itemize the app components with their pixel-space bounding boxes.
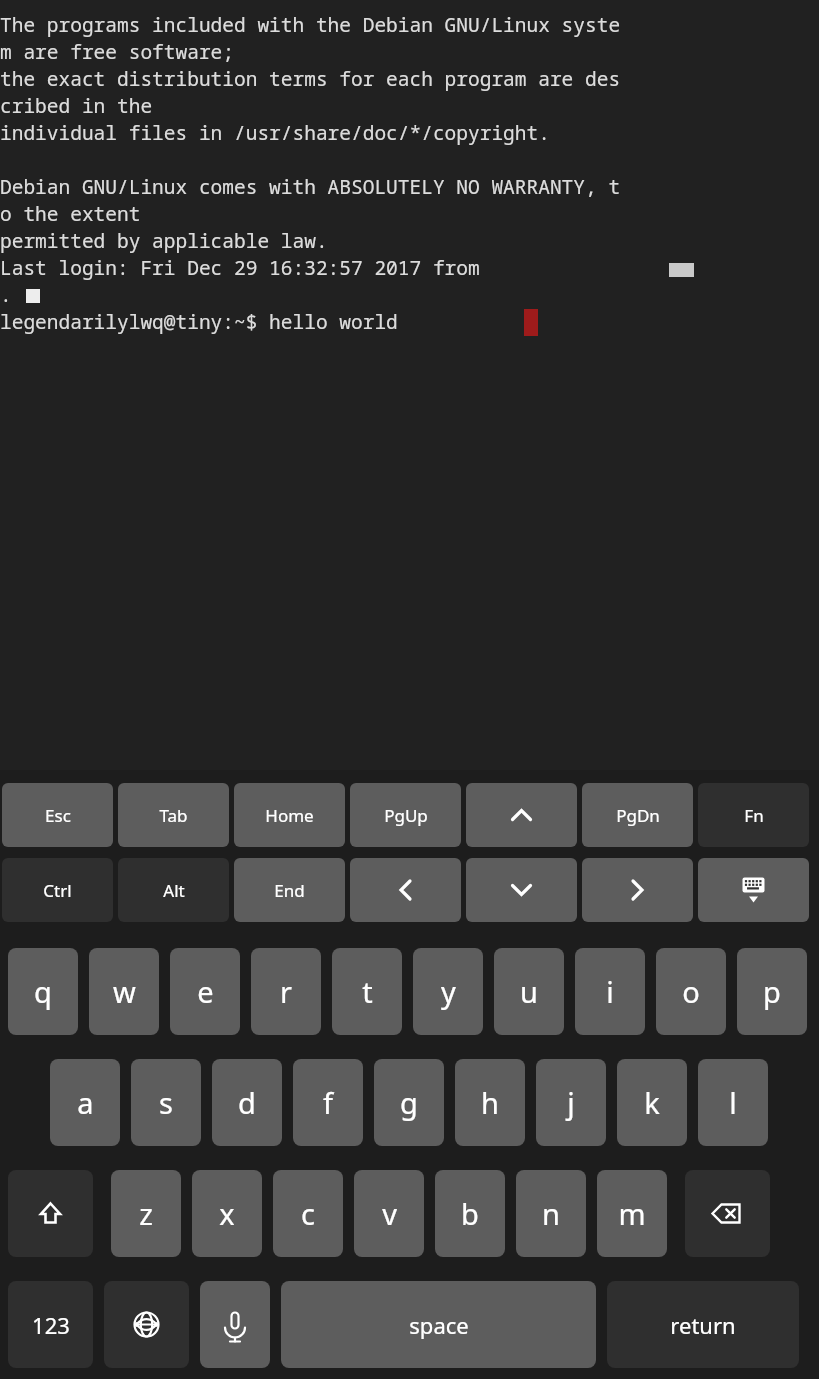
staticText: cribed in the	[0, 92, 153, 119]
staticText: g	[400, 1083, 418, 1122]
button[interactable]: q	[8, 948, 78, 1035]
button[interactable]: b	[435, 1170, 505, 1257]
button[interactable]: k	[617, 1059, 687, 1146]
button[interactable]: Voice input	[200, 1281, 270, 1368]
staticText: d	[238, 1083, 256, 1122]
staticText: Alt	[163, 879, 185, 902]
staticText: End	[274, 879, 305, 902]
button[interactable]: p	[737, 948, 807, 1035]
button[interactable]: PgUp	[350, 783, 461, 847]
staticText: r	[280, 972, 292, 1011]
button[interactable]: e	[170, 948, 240, 1035]
staticText: l	[729, 1083, 737, 1122]
staticText: u	[520, 972, 538, 1011]
staticText: x	[219, 1194, 235, 1233]
staticText: PgUp	[384, 804, 428, 827]
button[interactable]: The programs included with the Debian GN…	[0, 0, 819, 770]
button[interactable]: Down	[466, 858, 577, 922]
staticText: Debian GNU/Linux comes with ABSOLUTELY N…	[0, 173, 621, 200]
staticText: o the extent	[0, 200, 141, 227]
button[interactable]: Backspace	[685, 1170, 770, 1257]
staticText: f	[323, 1083, 333, 1122]
staticText: m are free software;	[0, 38, 235, 65]
button[interactable]: Fn	[698, 783, 809, 847]
staticText: the exact distribution terms for each pr…	[0, 65, 621, 92]
button[interactable]: h	[455, 1059, 525, 1146]
staticText: p	[763, 972, 781, 1011]
staticText: e	[197, 972, 214, 1011]
button[interactable]: t	[332, 948, 402, 1035]
staticText: v	[382, 1194, 397, 1233]
staticText: Fn	[744, 804, 764, 827]
staticText: n	[542, 1194, 560, 1233]
button[interactable]: n	[516, 1170, 586, 1257]
button[interactable]: o	[656, 948, 726, 1035]
staticText: Esc	[45, 804, 71, 827]
staticText: 123	[32, 1310, 70, 1340]
button[interactable]: i	[575, 948, 645, 1035]
staticText: i	[606, 972, 614, 1011]
button[interactable]: m	[597, 1170, 667, 1257]
staticText: Last login: Fri Dec 29 16:32:57 2017 fro…	[0, 254, 480, 281]
staticText: permitted by applicable law.	[0, 227, 328, 254]
staticText: q	[34, 972, 52, 1011]
staticText: Tab	[159, 804, 188, 827]
button[interactable]: Esc	[2, 783, 113, 847]
staticText: j	[567, 1083, 575, 1122]
staticText: t	[362, 972, 373, 1011]
staticText: return	[670, 1310, 736, 1340]
button[interactable]: w	[89, 948, 159, 1035]
staticText: s	[159, 1083, 173, 1122]
button[interactable]: u	[494, 948, 564, 1035]
button[interactable]: z	[111, 1170, 181, 1257]
button[interactable]: d	[212, 1059, 282, 1146]
staticText: a	[77, 1083, 94, 1122]
button[interactable]: r	[251, 948, 321, 1035]
staticText: y	[441, 972, 456, 1011]
staticText: o	[682, 972, 700, 1011]
button[interactable]: Right	[582, 858, 693, 922]
button[interactable]: Tab	[118, 783, 229, 847]
button[interactable]: Up	[466, 783, 577, 847]
staticText: individual files in /usr/share/doc/*/cop…	[0, 119, 550, 146]
button[interactable]: 123	[8, 1281, 93, 1368]
button[interactable]: Change language	[104, 1281, 189, 1368]
staticText: The programs included with the Debian GN…	[0, 11, 621, 38]
staticText: h	[481, 1083, 499, 1122]
button[interactable]: j	[536, 1059, 606, 1146]
button[interactable]: x	[192, 1170, 262, 1257]
staticText: m	[618, 1194, 646, 1233]
staticText: b	[461, 1194, 479, 1233]
button[interactable]: space	[281, 1281, 596, 1368]
button[interactable]: c	[273, 1170, 343, 1257]
staticText: k	[644, 1083, 660, 1122]
button[interactable]: y	[413, 948, 483, 1035]
button[interactable]: f	[293, 1059, 363, 1146]
button[interactable]: s	[131, 1059, 201, 1146]
button[interactable]: End	[234, 858, 345, 922]
staticText: PgDn	[616, 804, 660, 827]
button[interactable]: Hide keyboard	[698, 858, 809, 922]
staticText: legendarilylwq@tiny:~$ hello world	[0, 308, 398, 335]
staticText: w	[113, 972, 136, 1011]
button[interactable]: Home	[234, 783, 345, 847]
staticText: .	[0, 281, 12, 308]
staticText: space	[409, 1310, 469, 1340]
staticText: c	[301, 1194, 315, 1233]
button[interactable]: PgDn	[582, 783, 693, 847]
staticText: Home	[265, 804, 314, 827]
button[interactable]: return	[607, 1281, 799, 1368]
button[interactable]: a	[50, 1059, 120, 1146]
button[interactable]: g	[374, 1059, 444, 1146]
button[interactable]: Left	[350, 858, 461, 922]
button[interactable]: Ctrl	[2, 858, 113, 922]
staticText: Ctrl	[43, 879, 72, 902]
button[interactable]: l	[698, 1059, 768, 1146]
staticText: z	[139, 1194, 153, 1233]
button[interactable]: Shift	[8, 1170, 93, 1257]
button[interactable]: Alt	[118, 858, 229, 922]
button[interactable]: v	[354, 1170, 424, 1257]
